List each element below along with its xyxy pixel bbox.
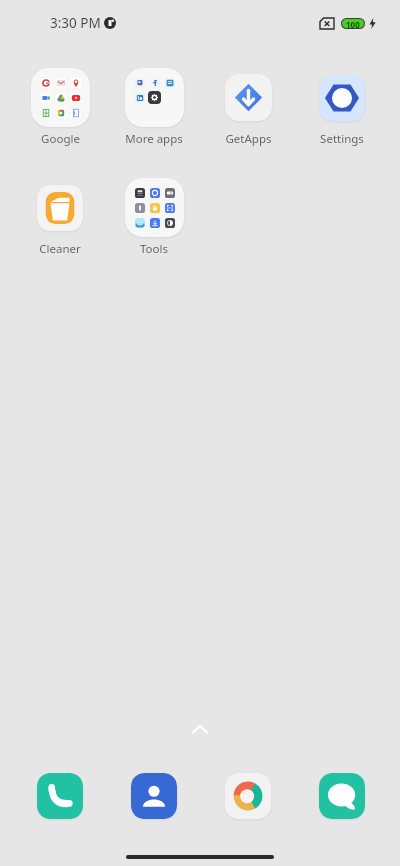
button[interactable]: GetApps bbox=[201, 68, 295, 147]
button[interactable]: Open app drawer bbox=[192, 723, 208, 735]
staticText: Tools bbox=[140, 241, 168, 257]
button[interactable]: Tools bbox=[107, 178, 201, 257]
button[interactable]: Chrome bbox=[225, 773, 271, 819]
button[interactable]: Contacts bbox=[131, 773, 177, 819]
button[interactable]: More apps bbox=[107, 68, 201, 147]
button[interactable]: Cleaner bbox=[13, 178, 107, 257]
staticText: 100 bbox=[346, 19, 360, 28]
staticText: Cleaner bbox=[39, 241, 81, 257]
staticText: More apps bbox=[125, 131, 183, 147]
staticText: GetApps bbox=[225, 131, 272, 147]
button[interactable]: Messages bbox=[319, 773, 365, 819]
button[interactable]: Phone bbox=[37, 773, 83, 819]
button[interactable]: Google bbox=[13, 68, 107, 147]
staticText: Google bbox=[41, 131, 80, 147]
staticText: 3:30 PM bbox=[50, 14, 101, 32]
button[interactable]: Settings bbox=[295, 68, 389, 147]
staticText: Settings bbox=[320, 131, 364, 147]
